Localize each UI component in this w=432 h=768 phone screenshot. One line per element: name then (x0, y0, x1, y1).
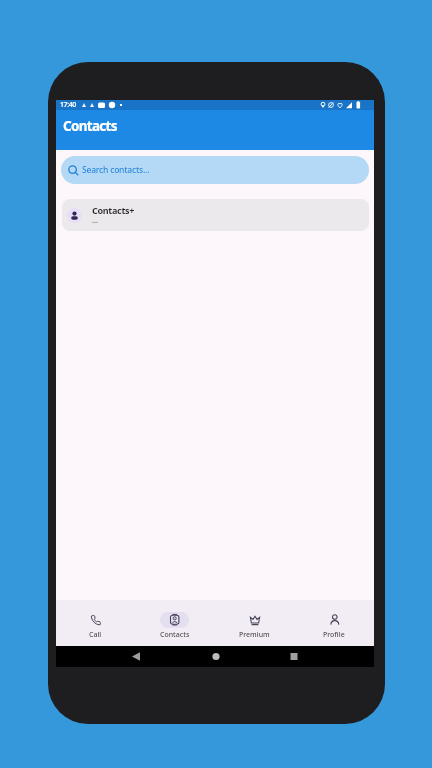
button[interactable]: Contacts+ (62, 199, 369, 231)
staticText: Contacts (160, 630, 190, 640)
button[interactable] (268, 646, 374, 667)
button[interactable]: Profile (294, 600, 374, 646)
button[interactable]: Call (56, 600, 135, 646)
button[interactable] (56, 646, 162, 667)
button[interactable]: Contacts (135, 600, 214, 646)
staticText: Contacts (63, 117, 117, 135)
button[interactable]: Premium (214, 600, 294, 646)
staticText: Contacts+ (92, 204, 135, 216)
staticText: Call (89, 630, 102, 640)
staticText: Search contacts... (82, 164, 150, 176)
staticText: Profile (323, 630, 345, 640)
staticText: 17:40 (60, 100, 76, 110)
staticText: Premium (239, 630, 270, 640)
staticText: ... (92, 216, 98, 226)
button[interactable] (162, 646, 268, 667)
button[interactable]: Search contacts... (61, 156, 369, 184)
